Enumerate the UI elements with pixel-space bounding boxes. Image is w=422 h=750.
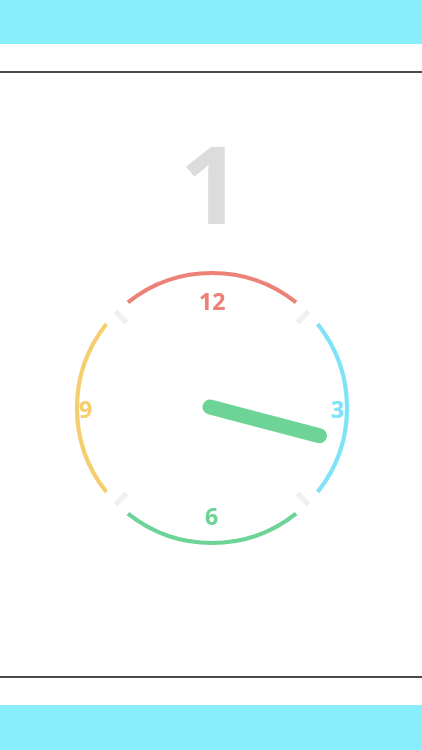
staticText: 1 bbox=[0, 109, 422, 256]
staticText: 12 bbox=[199, 285, 226, 316]
button[interactable]: Clock face showing 1 o'clock bbox=[67, 263, 357, 553]
staticText: 3 bbox=[331, 393, 345, 424]
staticText: 6 bbox=[205, 500, 219, 531]
staticText: 9 bbox=[79, 393, 93, 424]
